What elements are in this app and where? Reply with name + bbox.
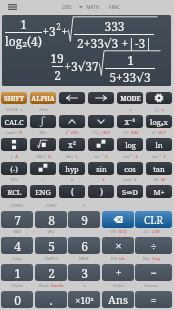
staticText: M+ (153, 187, 165, 197)
button[interactable]: Power (88, 138, 114, 151)
button[interactable]: Integral (30, 115, 56, 128)
staticText: BIN (131, 130, 138, 135)
staticText: ±Pi (110, 229, 116, 234)
staticText: CONV (45, 203, 57, 208)
staticText: C (75, 154, 78, 159)
staticText: SOLVE (6, 107, 18, 112)
staticText: Intg (152, 256, 160, 261)
staticText: LCM (151, 229, 160, 234)
button[interactable]: Menu (5, 1, 19, 13)
button[interactable]: MODE (117, 92, 143, 104)
button[interactable]: Fraction (1, 138, 27, 151)
staticText: log₂(4) (5, 33, 42, 49)
button[interactable]: sin (88, 162, 114, 175)
staticText: c (11, 154, 13, 159)
button[interactable]: 9 (68, 211, 100, 228)
staticText: . (49, 292, 53, 308)
staticText: 1 (20, 16, 27, 32)
button[interactable]: x⁻¹ (117, 115, 143, 128)
button[interactable]: 4 (1, 237, 33, 254)
staticText: = (150, 292, 157, 307)
staticText: MAT (13, 229, 22, 234)
staticText: d/dx (39, 107, 48, 112)
button[interactable]: Delete (102, 211, 134, 228)
button[interactable]: ( (59, 185, 85, 198)
staticText: x² (68, 139, 76, 150)
staticText: Abs (66, 154, 73, 159)
button[interactable]: x² (59, 138, 85, 151)
staticText: 2 (54, 67, 61, 83)
button[interactable]: hyp (59, 162, 85, 175)
button[interactable]: ÷ (135, 237, 172, 254)
staticText: 2 (56, 21, 61, 32)
button[interactable]: Absolute value (30, 162, 56, 175)
staticText: M- (154, 177, 159, 182)
button[interactable]: . (35, 291, 67, 308)
button[interactable]: + (102, 264, 134, 281)
button[interactable]: M+ (146, 185, 172, 198)
staticText: i (42, 177, 44, 182)
button[interactable]: SHIFT (1, 92, 27, 104)
staticText: + (115, 265, 122, 280)
staticText: 333 (104, 18, 125, 34)
button[interactable]: 8 (35, 211, 67, 228)
button[interactable]: ×10ˣ (68, 291, 100, 308)
staticText: History (144, 283, 158, 288)
staticText: 6 (81, 238, 88, 254)
staticText: 4 (14, 238, 21, 254)
button[interactable]: CLR (135, 211, 172, 228)
staticText: ±Ci (143, 229, 149, 234)
button[interactable]: Left (59, 92, 85, 104)
button[interactable]: 1 (2, 15, 171, 86)
button[interactable]: RCL (1, 185, 27, 198)
staticText: STO (10, 177, 18, 182)
staticText: 9 (81, 212, 88, 228)
staticText: ALPHA (31, 94, 55, 103)
button[interactable]: Power (59, 115, 85, 128)
staticText: +3 (42, 23, 56, 39)
button[interactable]: = (135, 291, 172, 308)
button[interactable]: Cursor down (88, 115, 114, 128)
staticText: DEG (62, 4, 72, 10)
staticText: , (98, 177, 100, 182)
button[interactable]: 5 (35, 237, 67, 254)
button[interactable]: × (102, 237, 134, 254)
button[interactable]: ALPHA (30, 92, 56, 104)
button[interactable]: Right (88, 92, 114, 104)
staticText: % (70, 177, 74, 182)
button[interactable]: ln (146, 138, 172, 151)
button[interactable]: 6 (68, 237, 100, 254)
staticText: eˣ (152, 130, 156, 135)
button[interactable]: CALC (1, 115, 27, 128)
button[interactable]: logₐx (146, 115, 172, 128)
button[interactable]: Square root (30, 138, 56, 151)
button[interactable]: 2 (35, 264, 67, 281)
staticText: cos⁻¹ (123, 154, 133, 159)
button[interactable]: 1 (1, 264, 33, 281)
staticText: VEC (47, 229, 55, 234)
staticText: tan⁻¹ (152, 154, 161, 159)
button[interactable]: cos (117, 162, 143, 175)
staticText: GCD (118, 229, 127, 234)
staticText: ˣ√□ (92, 130, 100, 135)
staticText: CALC (4, 117, 24, 127)
staticText: 1r (82, 203, 86, 208)
staticText: 5+33√3 (109, 69, 151, 85)
staticText: ) (100, 186, 103, 198)
staticText: X (102, 177, 105, 182)
button[interactable]: log (117, 138, 143, 151)
button[interactable]: ) (88, 185, 114, 198)
button[interactable]: ENG (30, 185, 56, 198)
button[interactable]: tan (146, 162, 172, 175)
button[interactable]: 7 (1, 211, 33, 228)
button[interactable]: Ans (102, 291, 134, 308)
button[interactable]: S⇔D (117, 185, 143, 198)
button[interactable]: − (135, 264, 172, 281)
button[interactable]: (-) (1, 162, 27, 175)
staticText: log (125, 140, 136, 150)
button[interactable]: 0 (1, 291, 33, 308)
staticText: CMPLX (44, 256, 58, 261)
button[interactable]: Settings (146, 92, 172, 104)
staticText: 19 (50, 50, 64, 66)
button[interactable]: 3 (68, 264, 100, 281)
